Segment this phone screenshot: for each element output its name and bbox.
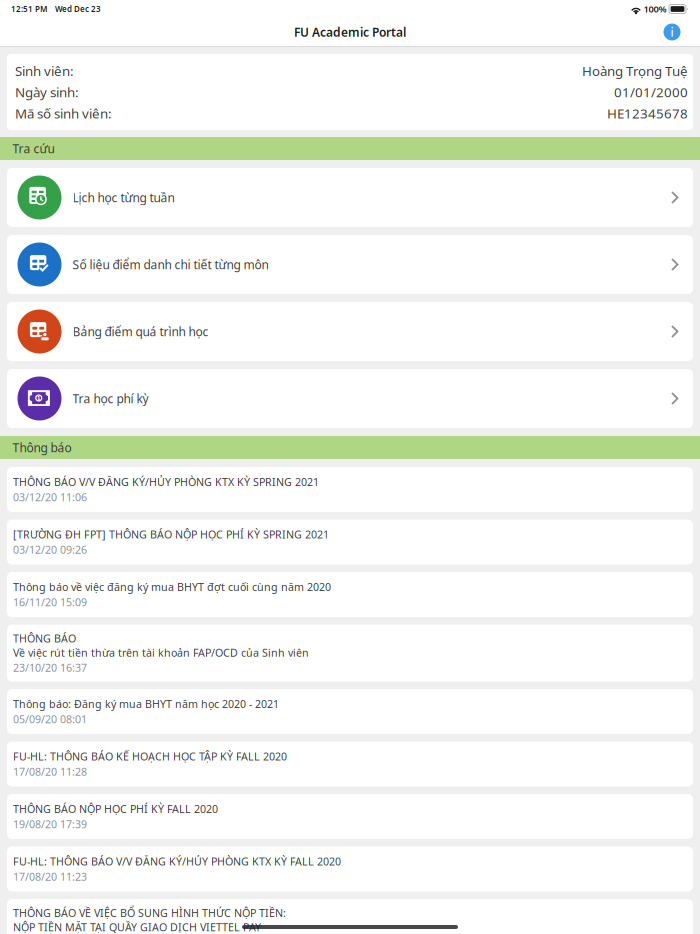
staticText: i xyxy=(670,24,673,40)
staticText: Lịch học từng tuần xyxy=(72,189,174,205)
staticText: 17/08/20 11:23 xyxy=(13,869,87,884)
staticText: Ngày sinh: xyxy=(15,83,79,101)
staticText: Mã số sinh viên: xyxy=(15,104,112,122)
button[interactable]: FU-HL: THÔNG BÁO KẾ HOẠCH HỌC TẬP KỲ FAL… xyxy=(7,741,693,786)
staticText: 01/01/2000 xyxy=(614,83,688,101)
staticText: 03/12/20 11:06 xyxy=(13,490,87,504)
staticText: THÔNG BÁO V/V ĐĂNG KÝ/HỦY PHÒNG KTX KỲ S… xyxy=(13,475,319,489)
button[interactable]: [TRƯỜNG ĐH FPT] THÔNG BÁO NỘP HỌC PHÍ KỲ… xyxy=(7,519,693,564)
button[interactable]: Tra học phí kỳ xyxy=(7,369,693,428)
staticText: 05/09/20 08:01 xyxy=(13,712,87,726)
button[interactable]: THÔNG BÁO NỘP HỌC PHÍ KỲ FALL 2020 xyxy=(7,794,693,839)
button[interactable]: THÔNG BÁO V/V ĐĂNG KÝ/HỦY PHÒNG KTX KỲ S… xyxy=(7,467,693,512)
staticText: Thông báo về việc đăng ký mua BHYT đợt c… xyxy=(13,580,331,594)
staticText: Bảng điểm quá trình học xyxy=(72,323,208,339)
staticText: HE12345678 xyxy=(607,104,688,122)
staticText: Thông báo: Đăng ký mua BHYT năm học 2020… xyxy=(13,697,279,711)
staticText: Wed Dec 23 xyxy=(47,4,101,14)
staticText: [TRƯỜNG ĐH FPT] THÔNG BÁO NỘP HỌC PHÍ KỲ… xyxy=(13,527,329,541)
staticText: 23/10/20 16:37 xyxy=(13,661,87,675)
staticText: Sinh viên: xyxy=(15,62,74,80)
staticText: 12:51 PM xyxy=(11,4,47,14)
staticText: 19/08/20 17:39 xyxy=(13,817,87,831)
button[interactable]: Số liệu điểm danh chi tiết từng môn xyxy=(7,235,693,294)
button[interactable]: Information xyxy=(657,18,687,46)
button[interactable]: Thông báo: Đăng ký mua BHYT năm học 2020… xyxy=(7,689,693,734)
button[interactable]: THÔNG BÁO VỀ VIỆC BỔ SUNG HÌNH THỨC NỘP … xyxy=(7,899,693,934)
staticText: Thông báo xyxy=(12,439,71,455)
staticText: Về việc rút tiền thừa trên tài khoản FAP… xyxy=(13,645,309,660)
staticText: FU-HL: THÔNG BÁO V/V ĐĂNG KÝ/HỦY PHÒNG K… xyxy=(13,854,341,868)
staticText: Tra cứu xyxy=(12,140,54,156)
button[interactable]: THÔNG BÁO xyxy=(7,624,693,681)
staticText: THÔNG BÁO xyxy=(13,631,76,645)
button[interactable]: Bảng điểm quá trình học xyxy=(7,302,693,361)
button[interactable]: Lịch học từng tuần xyxy=(7,168,693,227)
staticText: THÔNG BÁO VỀ VIỆC BỔ SUNG HÌNH THỨC NỘP … xyxy=(13,906,286,920)
staticText: THÔNG BÁO NỘP HỌC PHÍ KỲ FALL 2020 xyxy=(13,802,218,816)
staticText: 16/11/20 15:09 xyxy=(13,595,87,609)
staticText: 17/08/20 11:28 xyxy=(13,764,87,779)
staticText: Số liệu điểm danh chi tiết từng môn xyxy=(72,256,268,272)
staticText: 100% xyxy=(641,3,666,15)
staticText: NỘP TIỀN MẶT TẠI QUẦY GIAO DỊCH VIETTEL … xyxy=(13,920,261,934)
button[interactable]: FU-HL: THÔNG BÁO V/V ĐĂNG KÝ/HỦY PHÒNG K… xyxy=(7,846,693,891)
staticText: FU Academic Portal xyxy=(294,24,406,40)
staticText: Tra học phí kỳ xyxy=(72,390,148,406)
staticText: Hoàng Trọng Tuệ xyxy=(582,62,688,80)
staticText: FU-HL: THÔNG BÁO KẾ HOẠCH HỌC TẬP KỲ FAL… xyxy=(13,749,287,763)
button[interactable]: Thông báo về việc đăng ký mua BHYT đợt c… xyxy=(7,572,693,617)
staticText: 03/12/20 09:26 xyxy=(13,542,87,557)
